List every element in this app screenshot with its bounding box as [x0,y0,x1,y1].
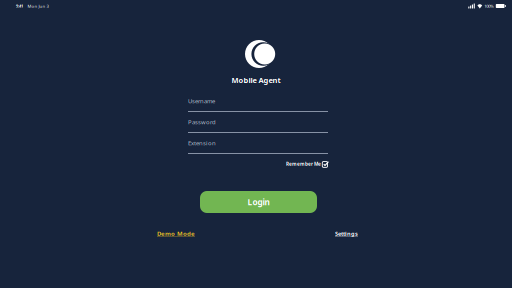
button[interactable]: Settings [335,229,358,238]
button[interactable]: Remember Me [188,160,329,168]
staticText: Password [188,118,216,126]
staticText: Mobile Agent [231,75,280,85]
button[interactable]: Demo Mode [157,229,195,238]
button[interactable]: Password [188,118,328,133]
staticText: Demo Mode [157,229,195,238]
button[interactable]: Username [188,97,328,112]
staticText: 9:41 [16,3,23,9]
staticText: Login [247,196,269,208]
button[interactable]: Login [200,191,317,213]
staticText: 100% [484,3,494,9]
staticText: Extension [188,139,216,147]
staticText: Settings [335,230,358,237]
button[interactable]: Extension [188,139,328,154]
staticText: Remember Me [286,161,321,167]
staticText: Mon Jun 3 [27,3,48,9]
staticText: Username [188,97,215,105]
